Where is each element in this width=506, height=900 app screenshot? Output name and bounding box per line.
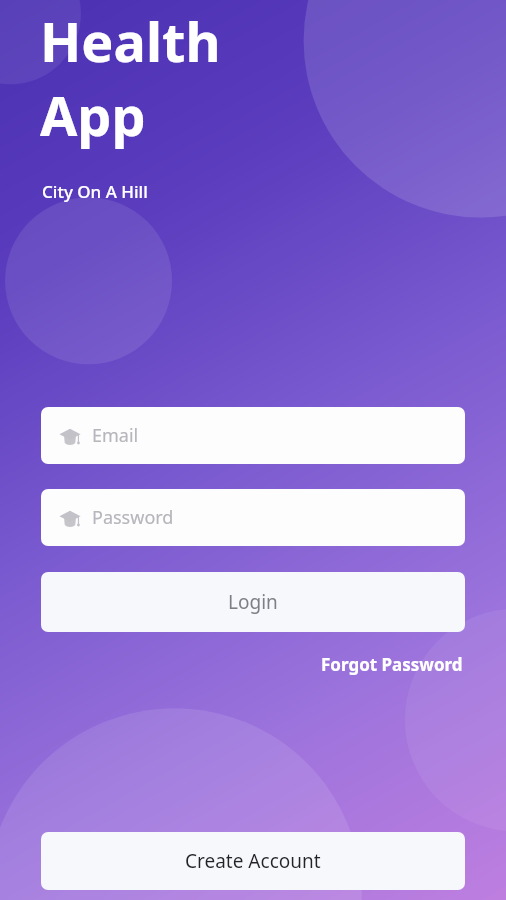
staticText: Create Account xyxy=(185,848,321,874)
staticText: City On A Hill xyxy=(42,180,148,203)
button[interactable]: Forgot Password xyxy=(319,649,465,680)
button[interactable]: Login xyxy=(41,572,465,632)
staticText: Health xyxy=(40,4,221,78)
button[interactable]: Create Account xyxy=(41,832,465,890)
staticText: Login xyxy=(228,589,278,615)
staticText: Forgot Password xyxy=(321,653,463,676)
button[interactable]: Email xyxy=(41,407,465,464)
staticText: App xyxy=(40,78,146,152)
staticText: Email xyxy=(92,423,139,448)
button[interactable]: Password xyxy=(41,489,465,546)
staticText: Password xyxy=(92,505,174,530)
